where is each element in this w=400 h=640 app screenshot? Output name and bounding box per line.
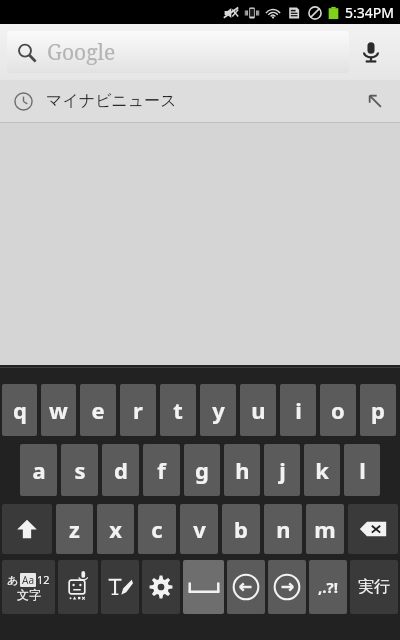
button[interactable]: e [80,384,116,436]
button[interactable]: u [240,384,276,436]
staticText: ,.?! [318,577,338,597]
button[interactable]: h [224,444,260,496]
staticText: 12 [37,572,50,587]
staticText: 5:34PM [345,3,394,22]
staticText: l [359,455,366,485]
button[interactable]: Emoji and voice input [58,560,98,614]
staticText: u [251,395,266,425]
button[interactable]: Insert suggestion [362,88,388,114]
staticText: a [32,455,46,485]
staticText: 文字 [17,587,41,602]
button[interactable]: s [61,444,98,496]
button[interactable]: Settings [142,560,180,614]
staticText: x [109,514,122,544]
staticText: h [235,455,250,485]
staticText: g [195,455,209,485]
staticText: o [331,395,345,425]
staticText: d [114,455,128,485]
button[interactable]: r [120,384,156,436]
staticText: Aa [22,573,34,587]
button[interactable]: g [184,444,220,496]
staticText: z [69,514,80,544]
button[interactable]: k [304,444,340,496]
staticText: m [314,514,336,544]
staticText: y [212,395,225,425]
button[interactable]: Google [7,31,349,73]
button[interactable]: Punctuation [309,560,347,614]
staticText: f [157,455,166,485]
button[interactable]: v [180,504,218,554]
button[interactable]: x [97,504,134,554]
button[interactable]: Input mode [2,560,55,614]
staticText: j [279,455,286,485]
staticText: b [234,514,248,544]
button[interactable]: y [200,384,236,436]
staticText: i [295,395,302,425]
button[interactable]: m [306,504,344,554]
staticText: n [276,514,291,544]
button[interactable]: Handwriting [101,560,139,614]
button[interactable]: f [143,444,180,496]
staticText: t [173,395,183,425]
button[interactable]: Cursor left [227,560,265,614]
staticText: r [133,395,143,425]
button[interactable]: Delete [348,504,398,554]
button[interactable]: j [264,444,300,496]
button[interactable]: o [320,384,356,436]
staticText: k [315,455,329,485]
staticText: マイナビニュース [46,91,177,111]
staticText: s [74,455,86,485]
staticText: q [13,395,27,425]
button[interactable]: a [20,444,57,496]
button[interactable]: l [344,444,380,496]
button[interactable]: t [160,384,196,436]
button[interactable]: 実行 [350,560,398,614]
button[interactable]: z [56,504,93,554]
staticText: c [151,514,163,544]
staticText: あ [7,573,19,587]
staticText: 実行 [358,577,390,597]
staticText: e [91,395,105,425]
button[interactable]: Cursor right [268,560,306,614]
button[interactable]: d [102,444,139,496]
staticText: v [193,514,206,544]
button[interactable]: w [41,384,76,436]
staticText: p [371,395,385,425]
button[interactable]: b [222,504,260,554]
button[interactable]: Space [183,560,224,614]
button[interactable]: マイナビニュース [0,80,400,122]
button[interactable]: i [280,384,316,436]
button[interactable]: q [2,384,37,436]
button[interactable]: p [360,384,396,436]
button[interactable]: Shift [2,504,52,554]
staticText: Google [47,38,116,67]
button[interactable]: n [264,504,302,554]
button[interactable]: c [138,504,176,554]
staticText: w [49,395,68,425]
button[interactable]: Voice search [349,24,393,80]
